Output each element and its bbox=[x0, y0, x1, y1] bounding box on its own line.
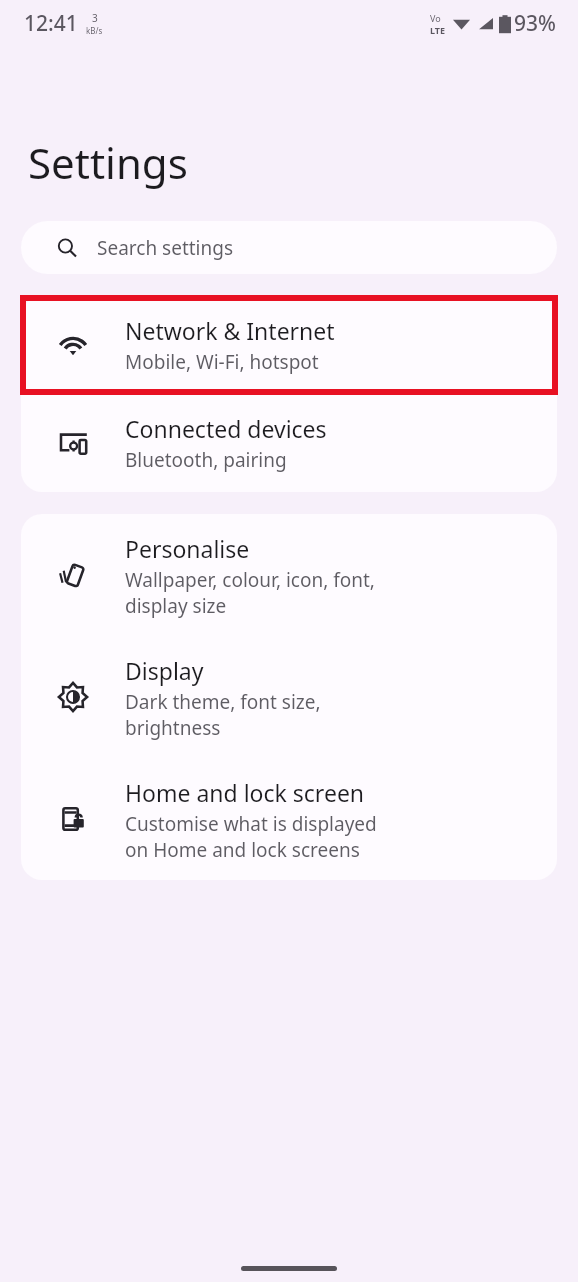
staticText: Home and lock screen bbox=[125, 777, 365, 808]
staticText: Dark theme, font size, brightness bbox=[125, 689, 321, 740]
other: Network and Internet bbox=[58, 330, 88, 360]
staticText: Mobile, Wi-Fi, hotspot bbox=[125, 349, 319, 375]
button[interactable]: Network and Internet bbox=[21, 296, 557, 394]
button[interactable]: Home and lock screen bbox=[21, 758, 557, 880]
other: Display bbox=[58, 682, 88, 712]
staticText: Wallpaper, colour, icon, font, display s… bbox=[125, 567, 375, 618]
staticText: Network & Internet bbox=[125, 315, 335, 346]
button[interactable]: Connected devices bbox=[21, 394, 557, 492]
other: Personalise bbox=[58, 560, 88, 590]
other: Home and lock screen bbox=[58, 804, 88, 834]
staticText: Bluetooth, pairing bbox=[125, 447, 287, 473]
staticText: Vo bbox=[430, 12, 441, 24]
staticText: Personalise bbox=[125, 533, 250, 564]
staticText: Search settings bbox=[97, 235, 234, 261]
staticText: Customise what is displayed on Home and … bbox=[125, 811, 377, 862]
staticText: 3 bbox=[92, 11, 98, 25]
staticText: Display bbox=[125, 655, 204, 686]
button[interactable]: Search settings bbox=[21, 221, 557, 274]
button[interactable]: Personalise bbox=[21, 514, 557, 636]
staticText: 12:41 bbox=[24, 9, 78, 38]
button[interactable]: Display bbox=[21, 636, 557, 758]
staticText: LTE bbox=[430, 24, 446, 36]
staticText: Connected devices bbox=[125, 413, 327, 444]
staticText: kB/s bbox=[86, 25, 103, 36]
other: Connected devices bbox=[58, 428, 88, 458]
staticText: 93% bbox=[514, 9, 556, 38]
staticText: Settings bbox=[28, 134, 188, 191]
